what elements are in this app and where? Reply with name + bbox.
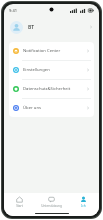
button[interactable]: Notification Center	[9, 42, 94, 60]
button[interactable]: Datenschutz&Sicherheit	[9, 80, 94, 98]
button[interactable]: Ich	[67, 193, 99, 210]
button[interactable]: BT	[4, 16, 99, 38]
staticText: Über uns	[23, 105, 41, 111]
button[interactable]: Über uns	[9, 99, 94, 117]
button[interactable]: Unterstützung	[35, 193, 67, 210]
staticText: 9:41	[9, 8, 17, 13]
staticText: Einstellungen	[23, 67, 50, 73]
button[interactable]: Einstellungen	[9, 61, 94, 79]
staticText: Datenschutz&Sicherheit	[23, 86, 71, 92]
staticText: Notification Center	[23, 48, 61, 54]
button[interactable]: Start	[4, 193, 35, 210]
staticText: Start	[16, 204, 23, 208]
staticText: Ich	[81, 204, 86, 208]
staticText: Unterstützung	[41, 204, 62, 208]
staticText: BT	[28, 24, 35, 31]
